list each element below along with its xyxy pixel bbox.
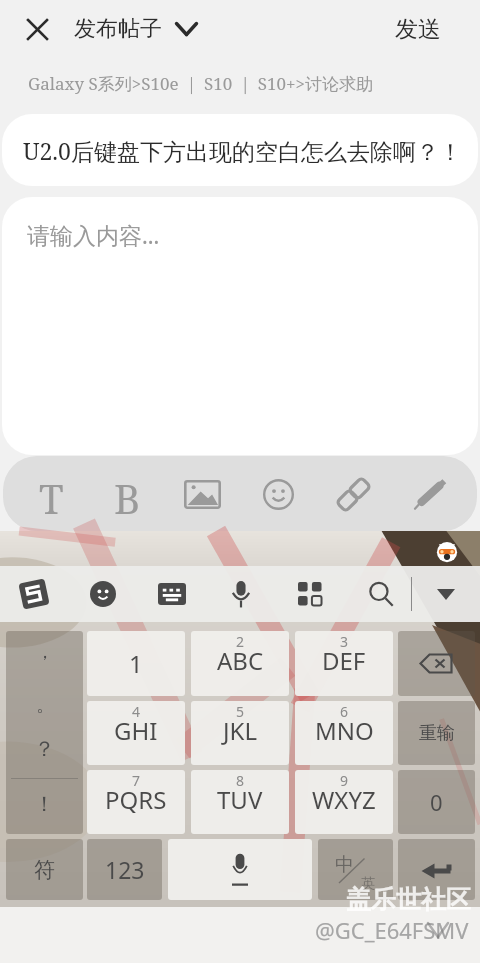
staticText: GHI	[114, 714, 158, 747]
staticText: TUV	[217, 783, 263, 816]
staticText: MNO	[315, 714, 374, 747]
button[interactable]: Insert link	[330, 471, 376, 517]
button[interactable]: Galaxy S系列>S10e ｜ S10 ｜ S10+>讨论求助	[0, 58, 480, 114]
button[interactable]: Key	[398, 631, 475, 696]
button[interactable]: 0	[398, 770, 475, 834]
staticText: 发布帖子	[74, 15, 162, 43]
button[interactable]: 请输入内容...	[2, 197, 478, 455]
staticText: 5	[236, 702, 245, 721]
button[interactable]: Voice input	[221, 566, 261, 622]
button[interactable]: Edit	[406, 471, 452, 517]
button[interactable]: 发送	[389, 7, 447, 52]
staticText: 7	[132, 771, 141, 790]
staticText: 4	[132, 702, 141, 721]
staticText: 123	[105, 854, 145, 885]
button[interactable]: Sogou input	[14, 566, 54, 622]
staticText: DEF	[322, 644, 366, 677]
button[interactable]: 符	[6, 839, 83, 900]
staticText: 3	[340, 632, 349, 651]
button[interactable]: Bold	[104, 471, 150, 517]
button[interactable]: U2.0后键盘下方出现的空白怎么去除啊？！	[2, 114, 478, 186]
button[interactable]: 2	[191, 631, 289, 696]
button[interactable]: 重输	[398, 701, 475, 765]
staticText: 中	[335, 853, 354, 877]
button[interactable]: More	[290, 566, 330, 622]
staticText: ABC	[217, 644, 264, 677]
button[interactable]: Assistant	[435, 539, 459, 563]
staticText: JKL	[223, 714, 257, 747]
staticText: 重输	[419, 722, 455, 745]
staticText: Galaxy S系列>S10e ｜ S10 ｜ S10+>讨论求助	[28, 72, 373, 95]
staticText: 。	[36, 694, 54, 717]
staticText: PQRS	[105, 783, 167, 816]
staticText: B	[114, 471, 141, 517]
button[interactable]: 9	[295, 770, 393, 834]
staticText: 0	[430, 787, 443, 817]
staticText: 英	[361, 875, 375, 893]
button[interactable]: 123	[87, 839, 162, 900]
staticText: 2	[236, 632, 245, 651]
button[interactable]: 1	[87, 631, 185, 696]
button[interactable]: Text style	[28, 471, 74, 517]
staticText: WXYZ	[312, 783, 376, 816]
button[interactable]: Chinese English toggle	[318, 839, 393, 900]
staticText: 1	[129, 647, 143, 680]
staticText: 8	[236, 771, 245, 790]
staticText: 盖乐世社区	[346, 884, 471, 915]
button[interactable]: Insert image	[179, 471, 225, 517]
button[interactable]: Emoji	[83, 566, 123, 622]
staticText: U2.0后键盘下方出现的空白怎么去除啊？！	[23, 135, 462, 166]
button[interactable]: Emoji	[255, 471, 301, 517]
button[interactable]: 5	[191, 701, 289, 765]
staticText: 请输入内容...	[27, 219, 160, 250]
button[interactable]: Search	[361, 566, 401, 622]
button[interactable]: Key	[398, 839, 475, 900]
staticText: 6	[340, 702, 349, 721]
button[interactable]: Keyboard	[152, 566, 192, 622]
staticText: 发送	[395, 15, 441, 44]
button[interactable]: 6	[295, 701, 393, 765]
button[interactable]: 4	[87, 701, 185, 765]
button[interactable]: 7	[87, 770, 185, 834]
staticText: 符	[34, 857, 55, 883]
button[interactable]: Space	[168, 839, 312, 900]
button[interactable]: 8	[191, 770, 289, 834]
staticText: @GC_E64FSMV	[315, 915, 469, 945]
button[interactable]: Hide keyboard	[428, 566, 464, 622]
button[interactable]: 3	[295, 631, 393, 696]
staticText: ！	[34, 791, 55, 817]
button[interactable]: Close	[18, 10, 56, 48]
button[interactable]: 发布帖子	[74, 15, 198, 43]
button[interactable]: ，	[6, 631, 83, 834]
staticText: ？	[34, 736, 55, 762]
staticText: 9	[340, 771, 349, 790]
staticText: T	[39, 471, 64, 517]
staticText: ，	[36, 641, 54, 664]
